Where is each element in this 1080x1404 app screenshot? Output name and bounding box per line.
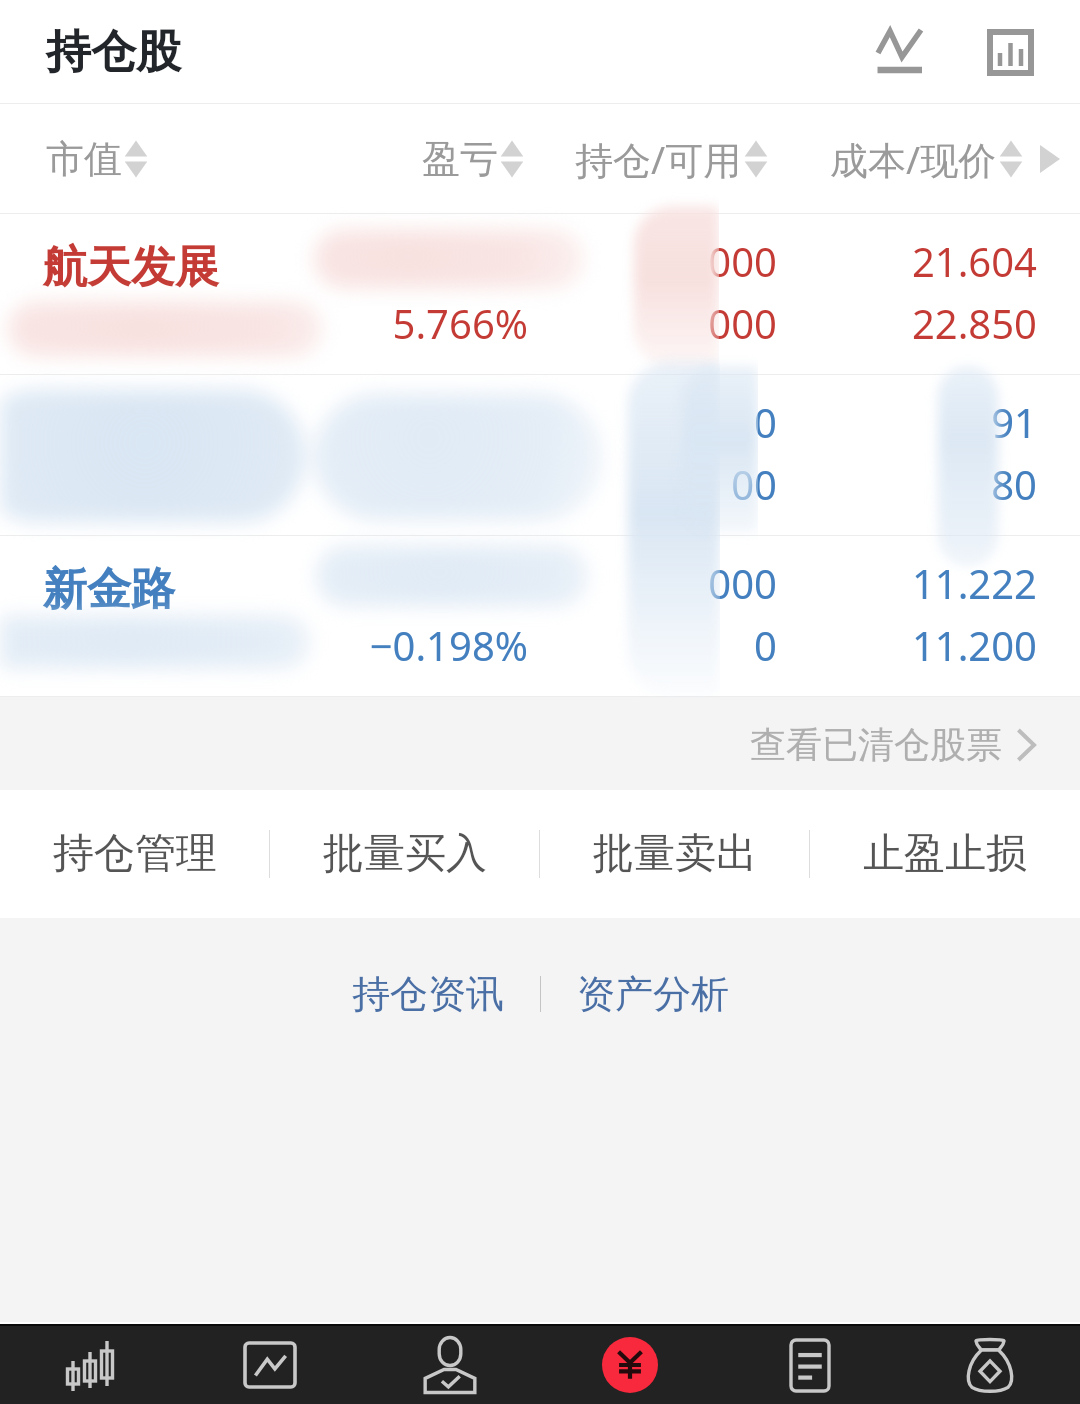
button[interactable]: 查看已清仓股票 [744, 712, 1042, 777]
button[interactable]: 批量卖出 [540, 790, 810, 918]
button[interactable]: 新金路 [0, 536, 1080, 697]
staticText: 批量卖出 [593, 828, 757, 880]
staticText: 持仓/可用 [575, 133, 742, 185]
staticText: 持仓管理 [53, 828, 217, 880]
button[interactable]: 盈亏 [422, 135, 524, 183]
staticText: 成本/现价 [830, 133, 997, 185]
staticText: 0 [500, 618, 777, 672]
staticText: 止盈止损 [863, 828, 1027, 880]
staticText: 000 [500, 296, 777, 350]
staticText: 11.222 [760, 556, 1037, 610]
staticText: 市值 [46, 135, 122, 183]
staticText: 11.200 [760, 618, 1037, 672]
staticText: 盈亏 [422, 135, 498, 183]
staticText: 5.766% [230, 296, 528, 350]
button[interactable]: Orders [720, 1326, 900, 1404]
staticText: 91 [760, 395, 1037, 449]
staticText: 22.850 [760, 296, 1037, 350]
staticText: 航天发展 [43, 240, 219, 295]
button[interactable]: Trend chart [854, 5, 946, 99]
button[interactable]: 止盈止损 [810, 790, 1080, 918]
button[interactable]: Market [0, 1326, 180, 1404]
button[interactable]: 资产分析 [541, 960, 743, 1028]
staticText: 0 [500, 395, 777, 449]
staticText: 000 [500, 234, 777, 288]
staticText: 资产分析 [577, 970, 729, 1018]
staticText: 查看已清仓股票 [750, 722, 1002, 767]
button[interactable]: Account [360, 1326, 540, 1404]
staticText: 80 [760, 457, 1037, 511]
button[interactable]: 持仓资讯 [338, 960, 540, 1028]
staticText [230, 457, 528, 511]
button[interactable]: 市值 [46, 135, 148, 183]
staticText: 批量买入 [323, 828, 487, 880]
button[interactable]: 成本/现价 [830, 133, 1023, 185]
staticText: 000 [500, 556, 777, 610]
staticText: −0.198% [230, 618, 528, 672]
button[interactable]: Trade [540, 1326, 720, 1404]
button[interactable]: 持仓/可用 [575, 133, 768, 185]
staticText: 新金路 [43, 562, 175, 617]
button[interactable]: Charts [180, 1326, 360, 1404]
staticText: 持仓股 [46, 24, 181, 81]
staticText: 00 [500, 457, 777, 511]
staticText: 21.604 [760, 234, 1037, 288]
button[interactable]: 批量买入 [270, 790, 540, 918]
button[interactable]: 航天发展 [0, 214, 1080, 375]
button[interactable]: 持仓管理 [0, 790, 270, 918]
staticText: 持仓资讯 [352, 970, 504, 1018]
button[interactable]: Wealth [900, 1326, 1080, 1404]
button[interactable]: 0 [0, 375, 1080, 536]
button[interactable]: Bar chart [964, 5, 1056, 99]
